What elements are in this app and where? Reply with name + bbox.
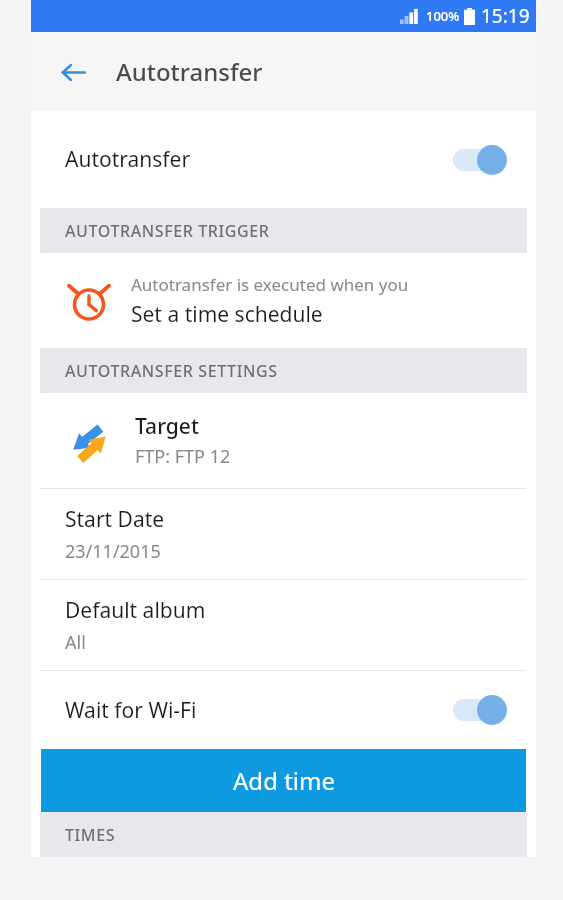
staticText: Target xyxy=(135,412,199,441)
button[interactable]: Wait for Wi-Fi xyxy=(31,671,536,749)
staticText: 100% xyxy=(426,7,460,25)
staticText: AUTOTRANSFER TRIGGER xyxy=(65,220,270,242)
staticText: TIMES xyxy=(65,824,116,846)
button[interactable]: Default album xyxy=(31,580,536,670)
button[interactable]: Autotransfer xyxy=(31,111,536,208)
staticText: All xyxy=(65,630,86,655)
staticText: AUTOTRANSFER SETTINGS xyxy=(65,360,278,382)
button[interactable]: Back xyxy=(51,50,95,94)
staticText: 23/11/2015 xyxy=(65,539,161,564)
staticText: Autotransfer is executed when you xyxy=(131,273,409,296)
button[interactable]: Add time xyxy=(41,749,526,812)
button[interactable]: Start Date xyxy=(31,489,536,579)
staticText: Default album xyxy=(65,596,206,625)
staticText: FTP: FTP 12 xyxy=(135,444,231,469)
staticText: Autotransfer xyxy=(65,145,191,174)
staticText: Start Date xyxy=(65,505,165,534)
button[interactable]: Autotransfer is executed when you xyxy=(31,253,536,348)
staticText: Add time xyxy=(233,764,335,797)
staticText: Set a time schedule xyxy=(131,300,323,329)
staticText: Autotransfer xyxy=(116,55,263,88)
staticText: 15:19 xyxy=(481,3,530,29)
staticText: Wait for Wi-Fi xyxy=(65,696,197,725)
button[interactable]: Target xyxy=(31,393,536,488)
